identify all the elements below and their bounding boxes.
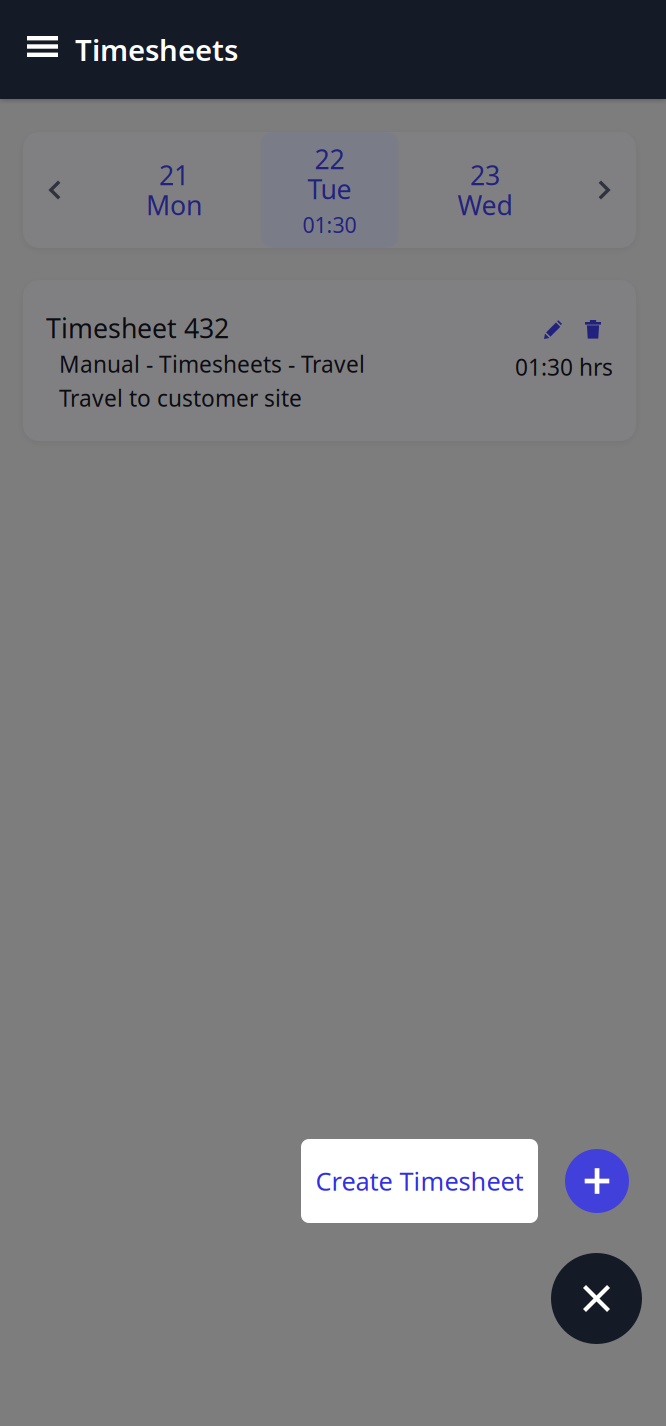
button[interactable]: Previous day [23,132,105,248]
staticText: 23 [470,157,500,193]
staticText: Mon [146,187,202,223]
staticText: 01:30 hrs [515,352,613,382]
button[interactable]: 22 [260,132,398,248]
button[interactable]: Delete timesheet [585,320,601,339]
button[interactable]: Add timesheet [565,1149,629,1213]
button[interactable]: 21 [105,132,243,248]
staticText: Tue [307,171,351,207]
staticText: Create Timesheet [315,1164,523,1198]
button[interactable]: Edit timesheet [544,320,562,339]
button[interactable]: 23 [416,132,554,248]
staticText: 21 [159,157,189,193]
staticText: Timesheets [75,30,238,69]
button[interactable]: Next day [554,132,636,248]
button[interactable]: Timesheet 432 [23,280,636,441]
button[interactable]: Create Timesheet [301,1139,538,1223]
button[interactable]: Close menu [551,1253,642,1344]
staticText: Wed [457,187,512,223]
staticText: Manual - Timesheets - Travel [59,349,365,379]
staticText: Timesheet 432 [46,310,229,346]
button[interactable]: Menu [0,36,75,63]
staticText: 22 [314,141,344,177]
staticText: Travel to customer site [59,383,302,413]
staticText: 01:30 [302,211,356,239]
